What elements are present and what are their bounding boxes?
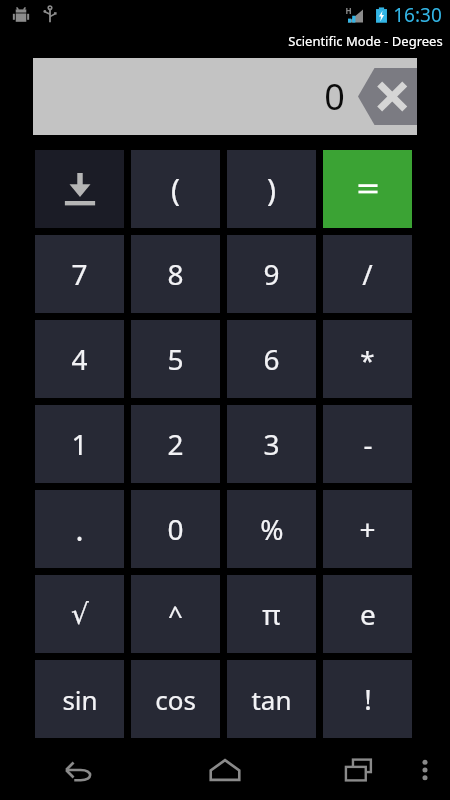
staticText: √ [71, 598, 89, 631]
button[interactable]: Equals [323, 150, 412, 228]
staticText: . [75, 509, 84, 550]
button[interactable]: ) [227, 150, 316, 228]
staticText: + [359, 510, 376, 548]
staticText: 4 [71, 340, 88, 378]
staticText: 16:30 [393, 2, 442, 28]
button[interactable]: 9 [227, 235, 316, 313]
button[interactable]: % [227, 490, 316, 568]
button[interactable]: 2 [131, 405, 220, 483]
staticText: 0 [167, 510, 184, 548]
button[interactable]: - [323, 405, 412, 483]
button[interactable]: + [323, 490, 412, 568]
button[interactable]: 1 [35, 405, 124, 483]
staticText: 5 [167, 340, 184, 378]
staticText: - [363, 425, 373, 463]
staticText: 1 [71, 425, 88, 463]
button[interactable]: 3 [227, 405, 316, 483]
staticText: 9 [263, 255, 280, 293]
staticText: * [360, 342, 375, 377]
button[interactable]: e [323, 575, 412, 653]
button[interactable]: . [35, 490, 124, 568]
staticText: 3 [263, 425, 280, 463]
button[interactable]: tan [227, 660, 316, 738]
button[interactable]: π [227, 575, 316, 653]
staticText: 0 [324, 72, 345, 121]
button[interactable]: / [323, 235, 412, 313]
button[interactable]: 0 [131, 490, 220, 568]
staticText: π [262, 595, 281, 633]
staticText: tan [251, 682, 292, 717]
button[interactable]: More options [408, 740, 442, 800]
button[interactable]: ! [323, 660, 412, 738]
button[interactable]: Recent apps [332, 740, 388, 800]
staticText: ! [364, 680, 372, 718]
button[interactable]: sin [35, 660, 124, 738]
staticText: cos [155, 682, 196, 717]
staticText: H [345, 5, 352, 16]
button[interactable]: Back [62, 740, 450, 800]
button[interactable]: 8 [131, 235, 220, 313]
button[interactable]: ^ [131, 575, 220, 653]
button[interactable]: ( [131, 150, 220, 228]
staticText: sin [62, 682, 98, 717]
button[interactable]: √ [35, 575, 124, 653]
button[interactable]: Save [35, 150, 124, 228]
button[interactable]: * [323, 320, 412, 398]
staticText: Scientific Mode - Degrees [288, 32, 443, 50]
staticText: / [362, 255, 373, 293]
button[interactable]: cos [131, 660, 220, 738]
staticText: % [260, 510, 284, 548]
button[interactable]: 6 [227, 320, 316, 398]
staticText: 6 [263, 340, 280, 378]
button[interactable]: Delete [358, 68, 417, 125]
button[interactable]: Home [195, 740, 255, 800]
button[interactable]: 5 [131, 320, 220, 398]
staticText: e [360, 595, 376, 633]
staticText: 7 [71, 255, 88, 293]
staticText: 2 [167, 425, 184, 463]
staticText: ^ [168, 597, 183, 632]
button[interactable]: 4 [35, 320, 124, 398]
staticText: ) [267, 169, 276, 210]
staticText: 8 [167, 255, 184, 293]
button[interactable]: 7 [35, 235, 124, 313]
staticText: ( [171, 169, 180, 210]
